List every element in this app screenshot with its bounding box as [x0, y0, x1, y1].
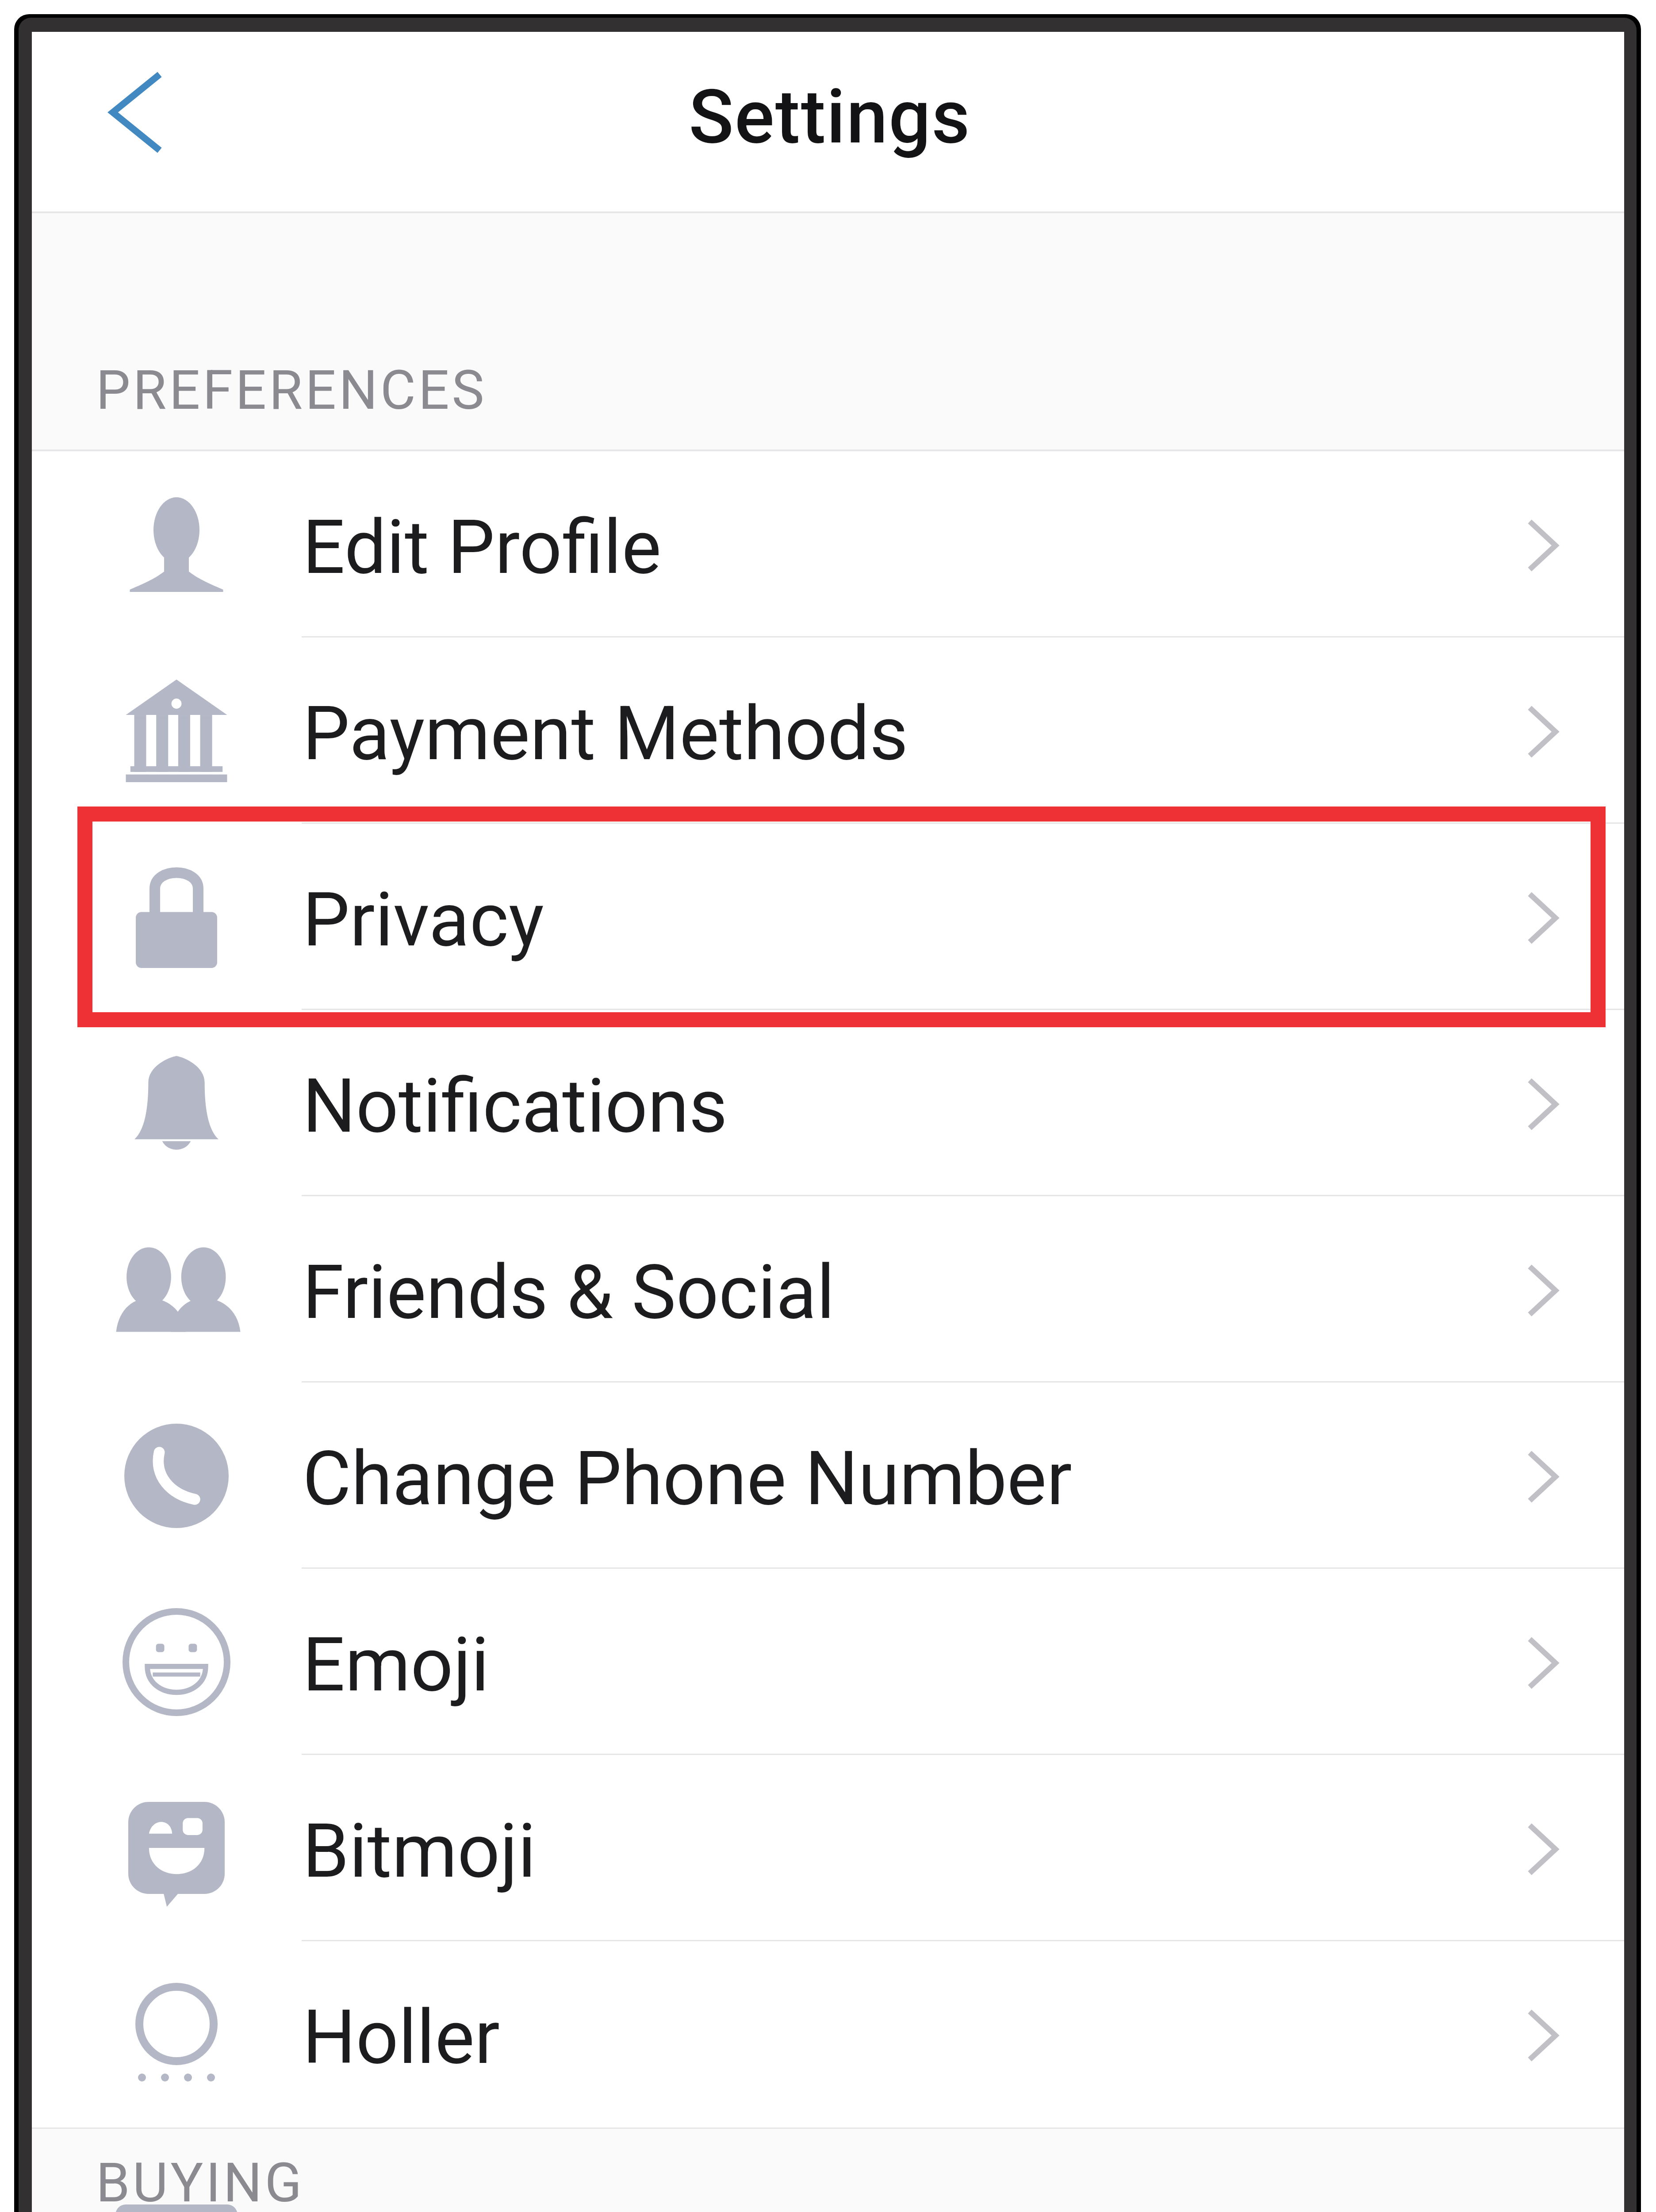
staticText: Settings [689, 73, 971, 161]
staticText: BUYING [96, 2151, 305, 2212]
button[interactable]: Friends & Social [32, 1196, 1624, 1382]
button[interactable]: Privacy [32, 824, 1624, 1010]
staticText: Edit Profile [303, 503, 662, 591]
staticText: PREFERENCES [96, 358, 487, 422]
staticText: Holler [303, 1993, 500, 2081]
button[interactable]: Notifications [32, 1010, 1624, 1196]
button[interactable]: Payment Methods [32, 637, 1624, 824]
button[interactable]: Bitmoji [32, 1755, 1624, 1941]
button[interactable]: Holler [32, 1941, 1624, 2128]
staticText: Payment Methods [303, 690, 908, 777]
staticText: Bitmoji [303, 1807, 536, 1895]
staticText: Privacy [303, 876, 544, 964]
staticText: Emoji [303, 1621, 490, 1709]
button[interactable]: Edit Profile [32, 451, 1624, 637]
staticText: Notifications [303, 1062, 728, 1150]
button[interactable]: Back [83, 56, 251, 189]
button[interactable]: Emoji [32, 1569, 1624, 1755]
staticText: Change Phone Number [303, 1435, 1072, 1522]
staticText: Friends & Social [303, 1248, 835, 1336]
button[interactable]: Change Phone Number [32, 1382, 1624, 1569]
